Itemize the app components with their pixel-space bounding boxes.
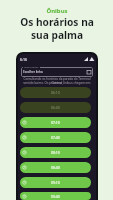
staticText: Linha ou serviço: [24, 66, 39, 69]
button[interactable]: 09:40: [20, 192, 91, 200]
staticText: 07:10: [51, 120, 60, 125]
button[interactable]: 06:40: [20, 102, 91, 113]
staticText: 6:16: [20, 57, 28, 62]
staticText: 09:40: [51, 194, 60, 199]
staticText: 06:10: [51, 90, 60, 95]
staticText: Ônibus: [46, 7, 68, 15]
staticText: 09:10: [51, 180, 60, 185]
button[interactable]: 07:40: [20, 132, 91, 143]
button[interactable]: 08:40: [20, 162, 91, 173]
staticText: Os horários na sua palma: [20, 15, 94, 42]
button[interactable]: 06:10: [20, 87, 91, 98]
button[interactable]: Escolher linha: [21, 67, 93, 77]
staticText: 07:40: [51, 135, 60, 140]
staticText: sentido bairro. Os próximos ônibus chega…: [20, 81, 94, 85]
staticText: 08:10: [51, 150, 60, 155]
staticText: Escolher linha: [23, 70, 43, 74]
staticText: 06:40: [51, 105, 60, 110]
staticText: 08:40: [51, 165, 60, 170]
staticText: Consultando os horários da parada do Ter…: [20, 77, 94, 85]
button[interactable]: 09:10: [20, 177, 91, 188]
button[interactable]: 08:10: [20, 147, 91, 158]
button[interactable]: 07:10: [20, 117, 91, 128]
